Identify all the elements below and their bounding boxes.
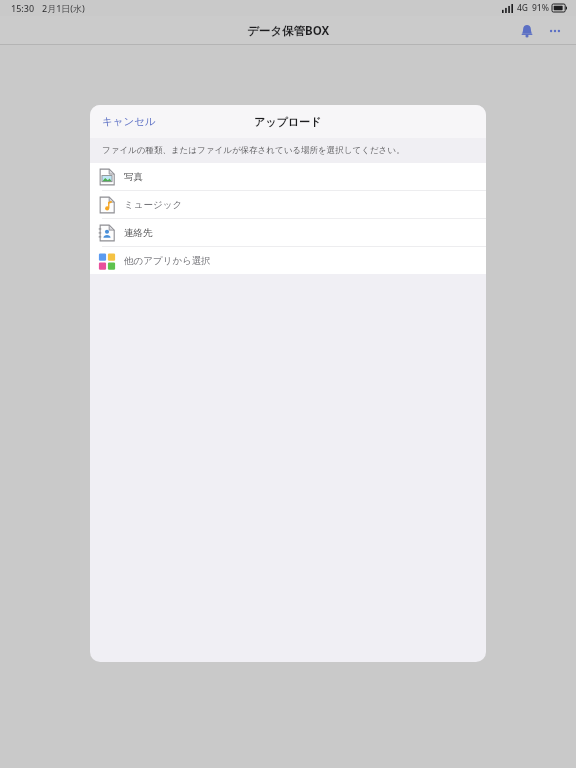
button[interactable]: その他のオプション <box>542 18 568 44</box>
staticText: データ保管BOX <box>247 23 330 39</box>
button[interactable]: 他のアプリから選択 <box>90 247 486 274</box>
button[interactable]: 連絡先 <box>90 219 486 246</box>
button[interactable]: 写真 <box>90 163 486 190</box>
staticText: ミュージック <box>124 199 183 211</box>
staticText: 4G <box>517 2 529 14</box>
button[interactable]: キャンセル <box>90 105 168 138</box>
staticText: ファイルの種類、またはファイルが保存されている場所を選択してください。 <box>102 145 405 156</box>
staticText: 他のアプリから選択 <box>124 255 211 267</box>
staticText: 連絡先 <box>124 227 153 239</box>
staticText: 15:30 <box>11 2 35 14</box>
staticText: 91% <box>532 2 549 14</box>
staticText: 写真 <box>124 171 143 183</box>
button[interactable]: 通知 <box>514 18 540 44</box>
staticText: 2月1日(水) <box>42 2 85 14</box>
button[interactable]: ミュージック <box>90 191 486 218</box>
staticText: キャンセル <box>102 115 156 128</box>
staticText: アップロード <box>254 115 322 129</box>
